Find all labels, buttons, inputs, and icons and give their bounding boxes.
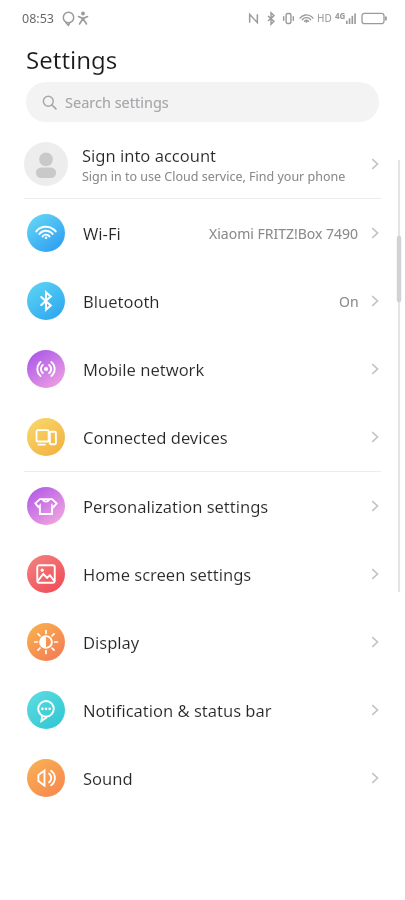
staticText: Bluetooth: [83, 290, 339, 312]
button[interactable]: Sound: [0, 744, 405, 812]
staticText: On: [339, 292, 359, 311]
staticText: Sign into account: [82, 144, 217, 166]
button[interactable]: Notification & status bar: [0, 676, 405, 744]
staticText: Display: [83, 631, 367, 653]
button[interactable]: Bluetooth: [0, 267, 405, 335]
staticText: 4G: [335, 10, 346, 21]
staticText: Sign in to use Cloud service, Find your …: [82, 168, 346, 185]
staticText: Settings: [26, 43, 118, 76]
button[interactable]: Wi-Fi: [0, 199, 405, 267]
staticText: Xiaomi FRITZ!Box 7490: [209, 224, 359, 243]
button[interactable]: Mobile network: [0, 335, 405, 403]
staticText: Sound: [83, 767, 367, 789]
button[interactable]: Personalization settings: [0, 472, 405, 540]
staticText: Search settings: [65, 92, 169, 112]
staticText: Personalization settings: [83, 495, 367, 517]
staticText: Connected devices: [83, 426, 367, 448]
button[interactable]: Home screen settings: [0, 540, 405, 608]
staticText: 08:53: [22, 10, 54, 27]
button[interactable]: Connected devices: [0, 403, 405, 471]
button[interactable]: Sign into account: [0, 130, 405, 198]
staticText: Home screen settings: [83, 563, 367, 585]
staticText: HD: [317, 11, 332, 25]
button[interactable]: Search settings: [26, 82, 379, 122]
staticText: Mobile network: [83, 358, 367, 380]
staticText: Wi-Fi: [83, 222, 209, 244]
button[interactable]: Display: [0, 608, 405, 676]
staticText: Notification & status bar: [83, 699, 367, 721]
